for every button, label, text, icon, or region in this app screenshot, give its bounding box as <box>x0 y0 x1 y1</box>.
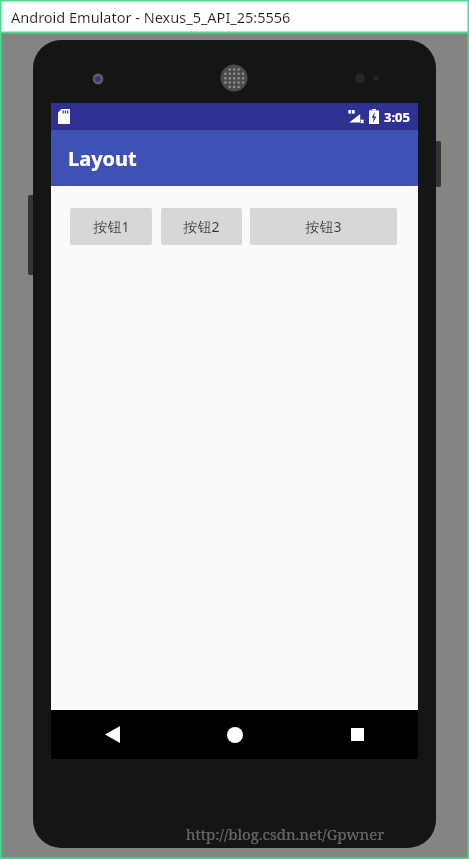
button[interactable]: 按钮3 <box>250 208 397 245</box>
staticText: Layout <box>68 145 137 172</box>
staticText: http://blog.csdn.net/Gpwner <box>186 824 385 844</box>
staticText: 3:05 <box>384 108 410 126</box>
button[interactable]: Back <box>51 710 174 759</box>
button[interactable]: 按钮2 <box>161 208 242 245</box>
staticText: Android Emulator - Nexus_5_API_25:5556 <box>11 7 291 27</box>
staticText: 按钮1 <box>93 217 130 236</box>
staticText: 按钮3 <box>305 217 342 236</box>
button[interactable]: Power <box>435 141 441 187</box>
staticText: 按钮2 <box>183 217 220 236</box>
button[interactable]: Volume <box>28 195 34 275</box>
button[interactable]: Recent apps <box>296 710 418 759</box>
button[interactable]: 按钮1 <box>70 208 152 245</box>
button[interactable]: Home <box>174 710 296 759</box>
